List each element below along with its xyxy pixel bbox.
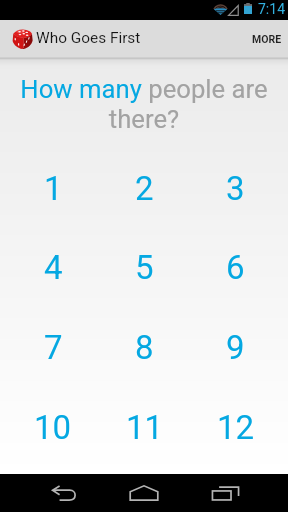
staticText: MORE	[252, 33, 282, 45]
staticText: 10	[34, 408, 72, 447]
staticText: 2	[135, 169, 154, 208]
button[interactable]: 9	[190, 307, 281, 387]
staticText: How many people are there?	[17, 74, 271, 134]
button[interactable]: 5	[99, 228, 190, 307]
button[interactable]: 8	[99, 307, 190, 387]
button[interactable]: 4	[7, 228, 99, 307]
staticText: 7	[44, 328, 63, 367]
button[interactable]: 6	[190, 228, 281, 307]
button[interactable]: 11	[99, 387, 190, 467]
button[interactable]: 12	[190, 387, 281, 467]
button[interactable]: MORE	[242, 20, 288, 57]
staticText: 6	[226, 248, 245, 287]
button[interactable]: Recent apps	[201, 474, 249, 512]
button[interactable]: 1	[7, 149, 99, 228]
staticText: 4	[44, 248, 63, 287]
button[interactable]: Back	[40, 474, 88, 512]
staticText: 1	[44, 169, 63, 208]
button[interactable]: Home	[120, 474, 168, 512]
staticText: 7:14	[258, 1, 285, 17]
staticText: 12	[217, 408, 255, 447]
staticText: 11	[126, 408, 164, 447]
button[interactable]: 3	[190, 149, 281, 228]
staticText: 3	[226, 169, 245, 208]
staticText: 9	[226, 328, 245, 367]
button[interactable]: 10	[7, 387, 99, 467]
staticText: 5	[135, 248, 154, 287]
button[interactable]: 7	[7, 307, 99, 387]
button[interactable]: 2	[99, 149, 190, 228]
staticText: Who Goes First	[36, 29, 141, 47]
staticText: 8	[135, 328, 154, 367]
